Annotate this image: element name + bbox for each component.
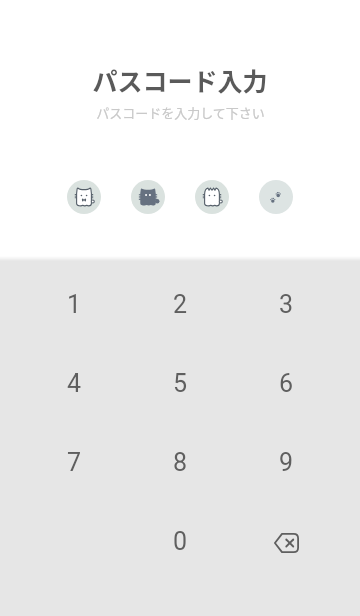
staticText: 4 [67, 369, 82, 398]
staticText: パスコード入力 [92, 62, 268, 98]
staticText: 0 [173, 527, 188, 556]
staticText: 8 [173, 448, 188, 477]
button[interactable]: 6 [233, 344, 339, 423]
button[interactable]: 9 [233, 423, 339, 502]
button[interactable]: 2 [127, 265, 233, 344]
staticText: 7 [67, 448, 82, 477]
button[interactable]: 5 [127, 344, 233, 423]
button[interactable]: Passcode digit [195, 180, 229, 214]
staticText: 3 [279, 290, 294, 319]
button[interactable]: 1 [21, 265, 127, 344]
staticText: 2 [173, 290, 188, 319]
button[interactable]: Passcode digit [259, 180, 293, 214]
button[interactable]: 4 [21, 344, 127, 423]
button[interactable]: 7 [21, 423, 127, 502]
staticText: 9 [279, 448, 294, 477]
button[interactable]: 8 [127, 423, 233, 502]
other: Backspace [274, 533, 299, 553]
button[interactable]: Passcode digit [67, 180, 101, 214]
staticText: 5 [173, 369, 188, 398]
staticText: 1 [67, 290, 82, 319]
button[interactable]: Backspace [233, 502, 339, 581]
staticText: 6 [279, 369, 294, 398]
staticText: パスコードを入力して下さい [96, 103, 265, 122]
button[interactable]: Passcode digit [131, 180, 165, 214]
button[interactable]: 3 [233, 265, 339, 344]
button[interactable]: 0 [127, 502, 233, 581]
